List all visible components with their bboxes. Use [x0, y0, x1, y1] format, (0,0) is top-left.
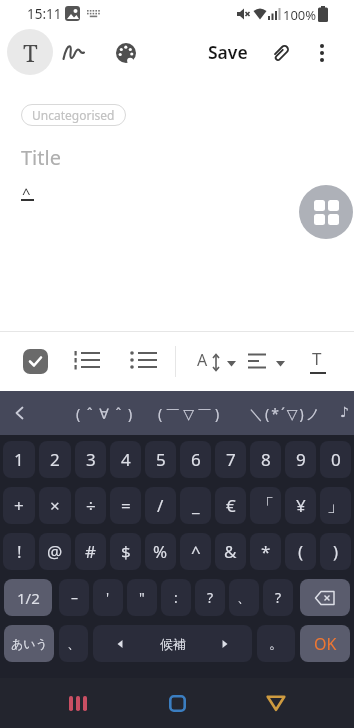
button[interactable]: ? — [195, 579, 225, 616]
button[interactable]: 8 — [250, 441, 281, 478]
button[interactable]: _ — [180, 487, 211, 524]
button[interactable]: ¥ — [285, 487, 316, 524]
button[interactable] — [74, 349, 102, 374]
staticText: 、 — [237, 589, 251, 607]
button[interactable] — [130, 349, 158, 374]
button[interactable] — [306, 37, 338, 69]
staticText: Uncategorised — [32, 107, 115, 123]
button[interactable]: € — [215, 487, 246, 524]
button[interactable]: 1 — [3, 441, 35, 478]
staticText: : — [174, 588, 178, 607]
button[interactable]: + — [3, 487, 35, 524]
staticText: (￣▽￣) — [158, 404, 223, 423]
staticText: 1/2 — [17, 588, 40, 608]
button[interactable]: / — [145, 487, 176, 524]
button[interactable]: # — [75, 533, 106, 570]
staticText: $ — [121, 540, 131, 563]
button[interactable]: 4 — [110, 441, 141, 478]
button[interactable]: 7 — [215, 441, 246, 478]
staticText: – — [71, 588, 78, 607]
button[interactable]: & — [215, 533, 246, 570]
staticText: 9 — [296, 448, 306, 471]
button[interactable]: ' — [93, 579, 123, 616]
button[interactable]: (￣▽￣) — [145, 391, 235, 435]
button[interactable]: $ — [110, 533, 141, 570]
button[interactable] — [300, 579, 350, 616]
button[interactable]: ^ — [180, 533, 211, 570]
button[interactable] — [248, 344, 288, 379]
staticText: 4 — [121, 448, 131, 471]
button[interactable]: @ — [39, 533, 71, 570]
button[interactable]: 。 — [257, 625, 295, 662]
staticText: / — [157, 494, 164, 517]
button[interactable]: あいう — [4, 625, 54, 662]
button[interactable] — [246, 678, 306, 728]
staticText: & — [224, 540, 237, 563]
button[interactable]: 0 — [320, 441, 351, 478]
staticText: A — [197, 349, 208, 371]
button[interactable] — [58, 37, 90, 69]
staticText: 5 — [156, 448, 166, 471]
staticText: = — [121, 494, 131, 517]
button[interactable]: ＼(*´▽)ノ — [238, 391, 334, 435]
button[interactable]: 「 — [250, 487, 281, 524]
button[interactable] — [48, 678, 108, 728]
button[interactable] — [299, 185, 353, 239]
button[interactable]: 」 — [320, 487, 351, 524]
staticText: ' — [106, 588, 110, 607]
staticText: 8 — [261, 448, 271, 471]
staticText: 2 — [50, 448, 60, 471]
button[interactable]: 3 — [75, 441, 106, 478]
button[interactable]: 5 — [145, 441, 176, 478]
button[interactable]: Save — [200, 34, 256, 70]
staticText: 、 — [67, 635, 81, 653]
button[interactable]: % — [145, 533, 176, 570]
staticText: × — [50, 494, 60, 517]
button[interactable]: – — [59, 579, 89, 616]
button[interactable]: 、 — [229, 579, 259, 616]
button[interactable]: 2 — [39, 441, 71, 478]
button[interactable]: T — [305, 344, 335, 379]
staticText: T — [23, 36, 38, 69]
button[interactable]: 6 — [180, 441, 211, 478]
button[interactable]: A — [195, 344, 237, 379]
button[interactable]: ) — [320, 533, 351, 570]
staticText: € — [226, 494, 236, 517]
staticText: + — [14, 494, 24, 517]
button[interactable]: ! — [3, 533, 35, 570]
button[interactable]: 9 — [285, 441, 316, 478]
button[interactable]: " — [127, 579, 157, 616]
staticText: 1 — [14, 448, 24, 471]
button[interactable]: 候補 — [93, 625, 252, 662]
button[interactable]: = — [110, 487, 141, 524]
staticText: * — [261, 540, 271, 563]
button[interactable]: OK — [300, 625, 350, 662]
staticText: 「 — [257, 495, 274, 516]
staticText: # — [85, 540, 96, 563]
staticText: Title — [21, 144, 61, 171]
button[interactable]: ? — [263, 579, 293, 616]
button[interactable]: 1/2 — [4, 579, 52, 616]
staticText: ! — [17, 540, 22, 563]
button[interactable] — [147, 678, 207, 728]
button[interactable]: : — [161, 579, 191, 616]
staticText: " — [139, 588, 145, 607]
button[interactable]: ÷ — [75, 487, 106, 524]
button[interactable] — [265, 37, 297, 69]
button[interactable] — [23, 349, 48, 374]
button[interactable]: Uncategorised — [21, 104, 126, 126]
button[interactable]: ( ˆ ∀ ˆ ) — [55, 391, 155, 435]
button[interactable]: T — [7, 29, 53, 75]
button[interactable]: × — [39, 487, 71, 524]
button[interactable]: ( — [285, 533, 316, 570]
staticText: Save — [208, 40, 248, 64]
button[interactable]: * — [250, 533, 281, 570]
staticText: ? — [207, 588, 214, 607]
button[interactable]: 、 — [59, 625, 88, 662]
staticText: ( — [298, 540, 304, 563]
staticText: _ — [192, 494, 200, 517]
button[interactable] — [110, 37, 142, 69]
staticText: ÷ — [86, 494, 96, 517]
staticText: @ — [47, 540, 63, 563]
staticText: 7 — [226, 448, 236, 471]
